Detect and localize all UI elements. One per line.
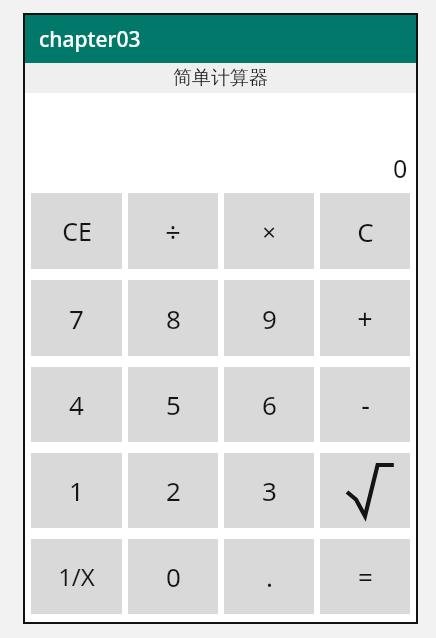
staticText: ×	[262, 215, 276, 248]
staticText: =	[358, 559, 373, 594]
staticText: 3	[262, 473, 277, 508]
button[interactable]: 2	[128, 453, 218, 528]
staticText: 0	[393, 151, 408, 185]
button[interactable]: 8	[128, 280, 218, 356]
staticText: CE	[62, 214, 92, 248]
staticText: 4	[69, 387, 84, 422]
button[interactable]: Square root	[320, 453, 410, 528]
staticText: 0	[166, 559, 181, 594]
staticText: ÷	[165, 213, 181, 250]
button[interactable]: 5	[128, 367, 218, 442]
button[interactable]: =	[320, 539, 410, 614]
staticText: 2	[166, 473, 181, 508]
button[interactable]: 3	[224, 453, 314, 528]
button[interactable]: 7	[31, 280, 122, 356]
button[interactable]: +	[320, 280, 410, 356]
button[interactable]: ÷	[128, 193, 218, 269]
staticText: 简单计算器	[173, 66, 268, 90]
button[interactable]: ×	[224, 193, 314, 269]
button[interactable]: 6	[224, 367, 314, 442]
staticText: 9	[262, 301, 277, 336]
staticText: 8	[166, 301, 181, 336]
staticText: 1/X	[58, 560, 95, 593]
staticText: 6	[262, 387, 277, 422]
button[interactable]: -	[320, 367, 410, 442]
staticText: 1	[69, 473, 84, 508]
button[interactable]: 1	[31, 453, 122, 528]
staticText: 5	[166, 387, 181, 422]
staticText: 7	[69, 301, 84, 336]
staticText: -	[361, 386, 370, 423]
staticText: .	[266, 559, 273, 594]
button[interactable]: 9	[224, 280, 314, 356]
button[interactable]: 4	[31, 367, 122, 442]
button[interactable]: CE	[31, 193, 122, 269]
staticText: +	[357, 300, 373, 337]
button[interactable]: .	[224, 539, 314, 614]
button[interactable]: C	[320, 193, 410, 269]
button[interactable]: 1/X	[31, 539, 122, 614]
staticText: C	[357, 214, 374, 249]
staticText: chapter03	[39, 25, 141, 54]
button[interactable]: 0	[128, 539, 218, 614]
